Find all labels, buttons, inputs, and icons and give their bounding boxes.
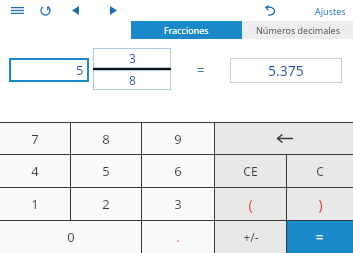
button[interactable]: +/- <box>215 221 286 253</box>
button[interactable]: 5 <box>71 155 141 187</box>
staticText: 4 <box>31 162 39 180</box>
button[interactable]: Next <box>100 0 126 21</box>
button[interactable]: 5 <box>9 58 89 82</box>
button[interactable]: Backspace <box>215 123 353 154</box>
staticText: Fracciones <box>164 24 209 36</box>
staticText: ( <box>248 195 253 214</box>
staticText: = <box>316 228 324 246</box>
button[interactable]: Refresh <box>32 0 58 21</box>
staticText: 7 <box>31 130 39 148</box>
button[interactable]: Fracciones <box>131 21 242 39</box>
staticText: = <box>197 61 205 79</box>
button[interactable]: Números decimales <box>242 21 353 39</box>
button[interactable]: = <box>287 221 353 253</box>
button[interactable]: 6 <box>142 155 214 187</box>
staticText: Números decimales <box>256 24 340 36</box>
button[interactable]: 7 <box>0 123 70 154</box>
staticText: 5 <box>76 61 84 79</box>
button[interactable]: 9 <box>142 123 214 154</box>
staticText: Ajustes <box>315 5 346 17</box>
button[interactable]: 8 <box>93 70 171 90</box>
button[interactable]: 0 <box>0 221 141 253</box>
staticText: 3 <box>129 50 136 66</box>
staticText: 8 <box>129 72 136 88</box>
button[interactable]: 4 <box>0 155 70 187</box>
button[interactable]: ) <box>287 188 353 220</box>
staticText: 8 <box>102 130 110 148</box>
staticText: 0 <box>67 228 75 246</box>
button[interactable]: 1 <box>0 188 70 220</box>
staticText: 3 <box>174 195 182 213</box>
button[interactable]: Previous <box>62 0 88 21</box>
button[interactable]: 5.375 <box>230 58 342 83</box>
staticText: 9 <box>174 130 182 148</box>
button[interactable]: 3 <box>142 188 214 220</box>
button[interactable]: 8 <box>71 123 141 154</box>
button[interactable]: CE <box>215 155 286 187</box>
staticText: 5.375 <box>268 61 304 80</box>
staticText: 5 <box>102 162 110 180</box>
button[interactable]: C <box>287 155 353 187</box>
button[interactable]: . <box>142 221 214 253</box>
staticText: 1 <box>31 195 39 213</box>
button[interactable]: 3 <box>93 48 171 68</box>
button[interactable]: Ajustes <box>307 0 353 21</box>
staticText: +/- <box>243 229 259 245</box>
staticText: C <box>316 163 324 179</box>
staticText: . <box>176 228 180 246</box>
staticText: 2 <box>102 195 110 213</box>
button[interactable]: ( <box>215 188 286 220</box>
staticText: CE <box>243 163 258 179</box>
button[interactable]: 2 <box>71 188 141 220</box>
staticText: ) <box>318 195 323 214</box>
button[interactable]: Menu <box>4 0 30 21</box>
staticText: 6 <box>174 162 182 180</box>
button[interactable]: Undo <box>258 0 284 21</box>
